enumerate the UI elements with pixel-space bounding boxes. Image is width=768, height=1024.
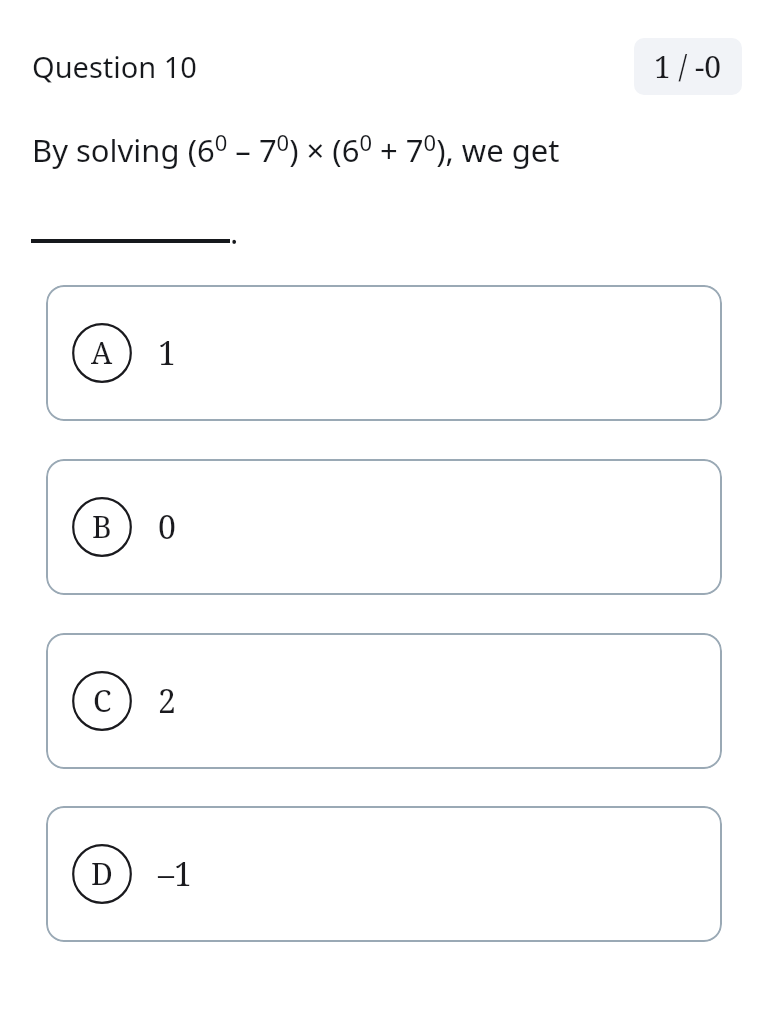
button[interactable]: A <box>46 285 722 421</box>
button[interactable]: 1 / -0 <box>634 38 742 95</box>
staticText: B <box>92 506 112 547</box>
button[interactable]: D <box>46 806 722 942</box>
staticText: Question 10 <box>32 47 197 86</box>
button[interactable]: C <box>46 633 722 769</box>
staticText: D <box>91 853 113 894</box>
staticText: A <box>91 332 113 373</box>
staticText: C <box>93 680 112 721</box>
staticText: 2 <box>158 679 176 723</box>
button[interactable]: B <box>46 459 722 595</box>
staticText: By solving (60 – 70) × (60 + 70), we get <box>32 127 560 171</box>
staticText: 0 <box>158 505 176 549</box>
staticText: 1 / -0 <box>654 46 722 87</box>
staticText: 1 <box>158 331 176 375</box>
staticText: . <box>230 211 239 253</box>
staticText: –1 <box>158 852 192 896</box>
